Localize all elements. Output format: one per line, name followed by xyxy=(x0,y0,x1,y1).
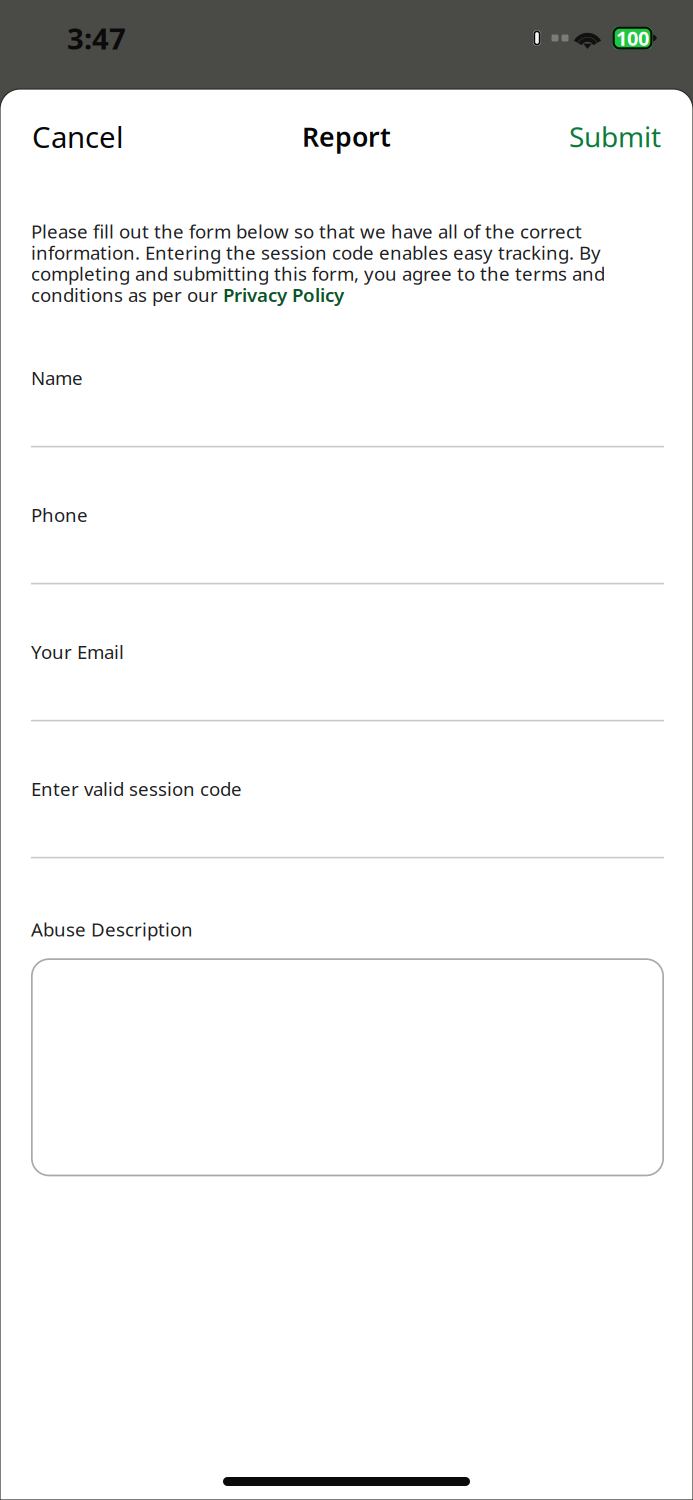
staticText: information. Entering the session code e… xyxy=(31,240,601,265)
staticText: conditions as per our xyxy=(31,282,223,307)
button[interactable]: Submit xyxy=(569,106,661,167)
button[interactable]: Privacy Policy xyxy=(223,285,344,304)
staticText: Please fill out the form below so that w… xyxy=(31,219,582,244)
staticText: Phone xyxy=(31,502,88,527)
staticText: 3:47 xyxy=(67,18,126,57)
staticText: Your Email xyxy=(31,639,124,664)
staticText: Report xyxy=(302,119,391,154)
button[interactable]: Your Email xyxy=(31,642,664,779)
staticText: Abuse Description xyxy=(31,917,193,942)
staticText: Privacy Policy xyxy=(223,282,344,307)
button[interactable]: Cancel xyxy=(32,105,124,168)
button[interactable]: Name xyxy=(31,368,664,505)
staticText: Enter valid session code xyxy=(31,776,242,801)
staticText: Cancel xyxy=(32,117,124,156)
staticText: 100 xyxy=(616,25,649,51)
button[interactable]: Enter valid session code xyxy=(31,779,664,916)
button[interactable] xyxy=(31,958,664,1176)
staticText: Name xyxy=(31,365,83,390)
button[interactable]: Phone xyxy=(31,505,664,642)
staticText: completing and submitting this form, you… xyxy=(31,261,605,286)
staticText: Submit xyxy=(569,118,661,155)
